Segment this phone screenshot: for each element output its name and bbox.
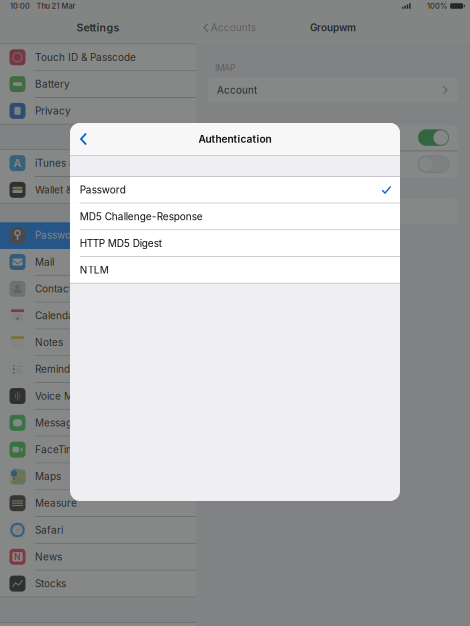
button[interactable]: Password xyxy=(70,177,400,203)
staticText: Privacy xyxy=(35,105,71,117)
staticText: Groupwm xyxy=(310,22,356,34)
staticText: Battery xyxy=(35,78,70,90)
staticText: Authentication xyxy=(198,133,271,145)
staticText: Maps xyxy=(35,470,61,482)
button[interactable]: Privacy xyxy=(0,98,196,124)
button[interactable]: Mail xyxy=(0,249,196,275)
staticText: Measure xyxy=(35,497,77,509)
button[interactable]: HTTP MD5 Digest xyxy=(70,230,400,256)
staticText: Messages xyxy=(35,417,83,429)
button[interactable]: Safari xyxy=(0,517,196,543)
button[interactable]: A xyxy=(0,150,196,176)
staticText: NTLM xyxy=(80,264,109,276)
button[interactable]: N xyxy=(0,544,196,570)
staticText: 10:00 xyxy=(10,1,30,10)
staticText: 100% xyxy=(427,1,447,10)
staticText: A xyxy=(13,157,21,169)
button[interactable]: Notes xyxy=(208,151,458,177)
staticText: iTunes & App Store xyxy=(35,157,125,169)
button[interactable]: Account xyxy=(208,77,458,103)
staticText: Thu 21 Mar xyxy=(36,1,75,10)
button[interactable]: Contacts xyxy=(0,276,196,302)
staticText: HTTP MD5 Digest xyxy=(80,237,162,249)
staticText: MD5 Challenge-Response xyxy=(80,210,203,223)
button[interactable]: Maps xyxy=(0,463,196,489)
button[interactable]: Touch ID & Passcode xyxy=(0,44,196,70)
staticText: IMAP xyxy=(215,63,235,73)
button[interactable]: Accounts xyxy=(196,12,256,43)
staticText: Mail xyxy=(217,132,236,144)
button[interactable]: Reminders xyxy=(0,356,196,382)
button[interactable]: Notes xyxy=(0,329,196,355)
button[interactable]: MD5 Challenge-Response xyxy=(70,204,400,229)
button[interactable]: Wallet & Apple Pay xyxy=(0,177,196,203)
staticText: Calendar xyxy=(35,310,78,322)
button[interactable]: Voice Memos xyxy=(0,383,196,409)
staticText: Passwords & Accounts xyxy=(35,229,143,241)
staticText: Wallet & Apple Pay xyxy=(35,184,122,196)
staticText: Stocks xyxy=(35,578,66,590)
staticText: Mail xyxy=(35,256,54,268)
staticText: Accounts xyxy=(211,22,256,34)
button[interactable]: Mail xyxy=(208,125,458,150)
staticText: News xyxy=(35,551,62,563)
staticText: Reminders xyxy=(35,363,85,375)
button[interactable]: Battery xyxy=(0,71,196,97)
button[interactable]: Calendar xyxy=(0,303,196,328)
staticText: Voice Memos xyxy=(35,390,99,402)
button[interactable]: Back xyxy=(70,123,110,155)
staticText: Account xyxy=(217,84,257,96)
staticText: Safari xyxy=(35,524,63,536)
button[interactable]: FaceTime xyxy=(0,437,196,462)
button[interactable]: Measure xyxy=(0,490,196,516)
button[interactable]: Delete Account xyxy=(208,199,458,225)
staticText: Touch ID & Passcode xyxy=(35,51,136,63)
button[interactable]: Stocks xyxy=(0,571,196,596)
staticText: Password xyxy=(80,184,126,196)
button[interactable]: Messages xyxy=(0,410,196,436)
staticText: Notes xyxy=(35,336,63,348)
staticText: Contacts xyxy=(35,283,77,295)
staticText: FaceTime xyxy=(35,444,81,456)
button[interactable]: Passwords & Accounts xyxy=(0,222,196,248)
staticText: N xyxy=(14,551,21,562)
staticText: Settings xyxy=(76,21,119,34)
button[interactable]: NTLM xyxy=(70,257,400,283)
